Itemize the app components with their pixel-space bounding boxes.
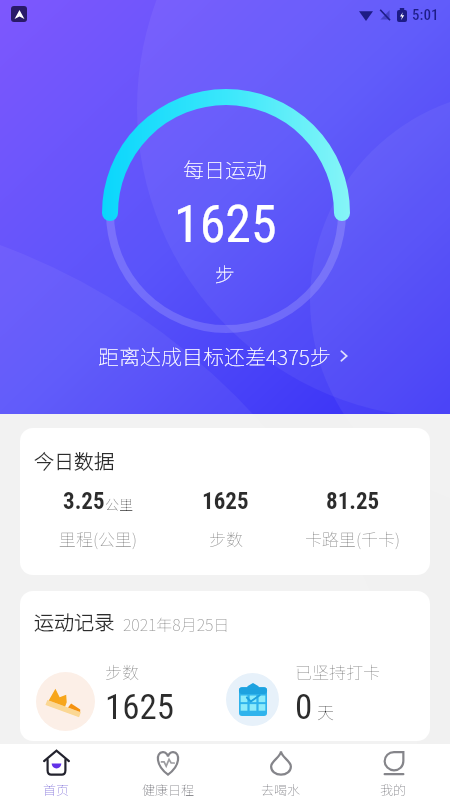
staticText: 步数 (105, 659, 139, 684)
staticText: 2021年8月25日 (123, 612, 230, 635)
staticText: 已坚持打卡 (295, 659, 380, 684)
staticText: 81.25 (326, 488, 380, 515)
button[interactable]: 健康日程 (112, 744, 224, 801)
staticText: 距离达成目标还差4375步 (98, 341, 331, 371)
staticText: 里程(公里) (59, 526, 138, 551)
staticText: 健康日程 (142, 780, 195, 799)
staticText: 卡路里(千卡) (305, 526, 401, 551)
staticText: 5:01 (412, 6, 439, 24)
staticText: 1625 (202, 488, 249, 515)
button[interactable]: 去喝水 (224, 744, 337, 801)
staticText: 我的 (380, 780, 407, 799)
staticText: 首页 (43, 780, 70, 799)
staticText: 每日运动 (183, 154, 267, 184)
staticText: 步数 (209, 526, 243, 551)
staticText: 步 (215, 259, 235, 288)
staticText: 3.25 (63, 488, 105, 515)
staticText: 1625 (105, 687, 175, 728)
button[interactable]: 我的 (337, 744, 450, 801)
staticText: 1625 (174, 194, 277, 255)
staticText: 今日数据 (34, 446, 114, 475)
button[interactable]: 首页 (0, 744, 112, 801)
staticText: 运动记录 (34, 607, 114, 636)
staticText: 公里 (105, 494, 133, 514)
staticText: 去喝水 (261, 780, 301, 799)
staticText: 天 (317, 699, 334, 724)
staticText: 0 (295, 687, 313, 728)
button[interactable]: 距离达成目标还差4375步 (92, 337, 358, 375)
